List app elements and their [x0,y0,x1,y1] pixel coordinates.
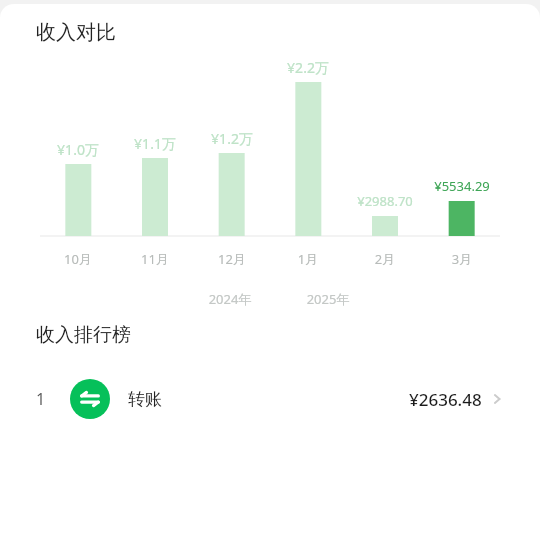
button[interactable]: 1 [0,373,540,425]
staticText: 12月 [192,250,272,268]
staticText: 1 [36,388,46,410]
staticText: ¥5534.29 [417,177,507,195]
staticText: ¥1.1万 [110,134,200,153]
staticText: 收入对比 [36,20,116,45]
staticText: ¥2988.70 [340,192,430,210]
staticText: 11月 [115,250,195,268]
other: 转账 [70,379,110,419]
staticText: 收入排行榜 [36,323,131,347]
staticText: 2024年 [190,290,270,308]
staticText: 2月 [345,250,425,268]
staticText: 1月 [268,250,348,268]
staticText: ¥2.2万 [263,58,353,77]
staticText: 10月 [38,250,118,268]
staticText: 2025年 [288,290,368,308]
staticText: ¥2636.48 [409,388,482,411]
staticText: 转账 [128,389,162,410]
staticText: ¥1.0万 [33,140,123,159]
staticText: ¥1.2万 [187,129,277,148]
staticText: 3月 [422,250,502,268]
